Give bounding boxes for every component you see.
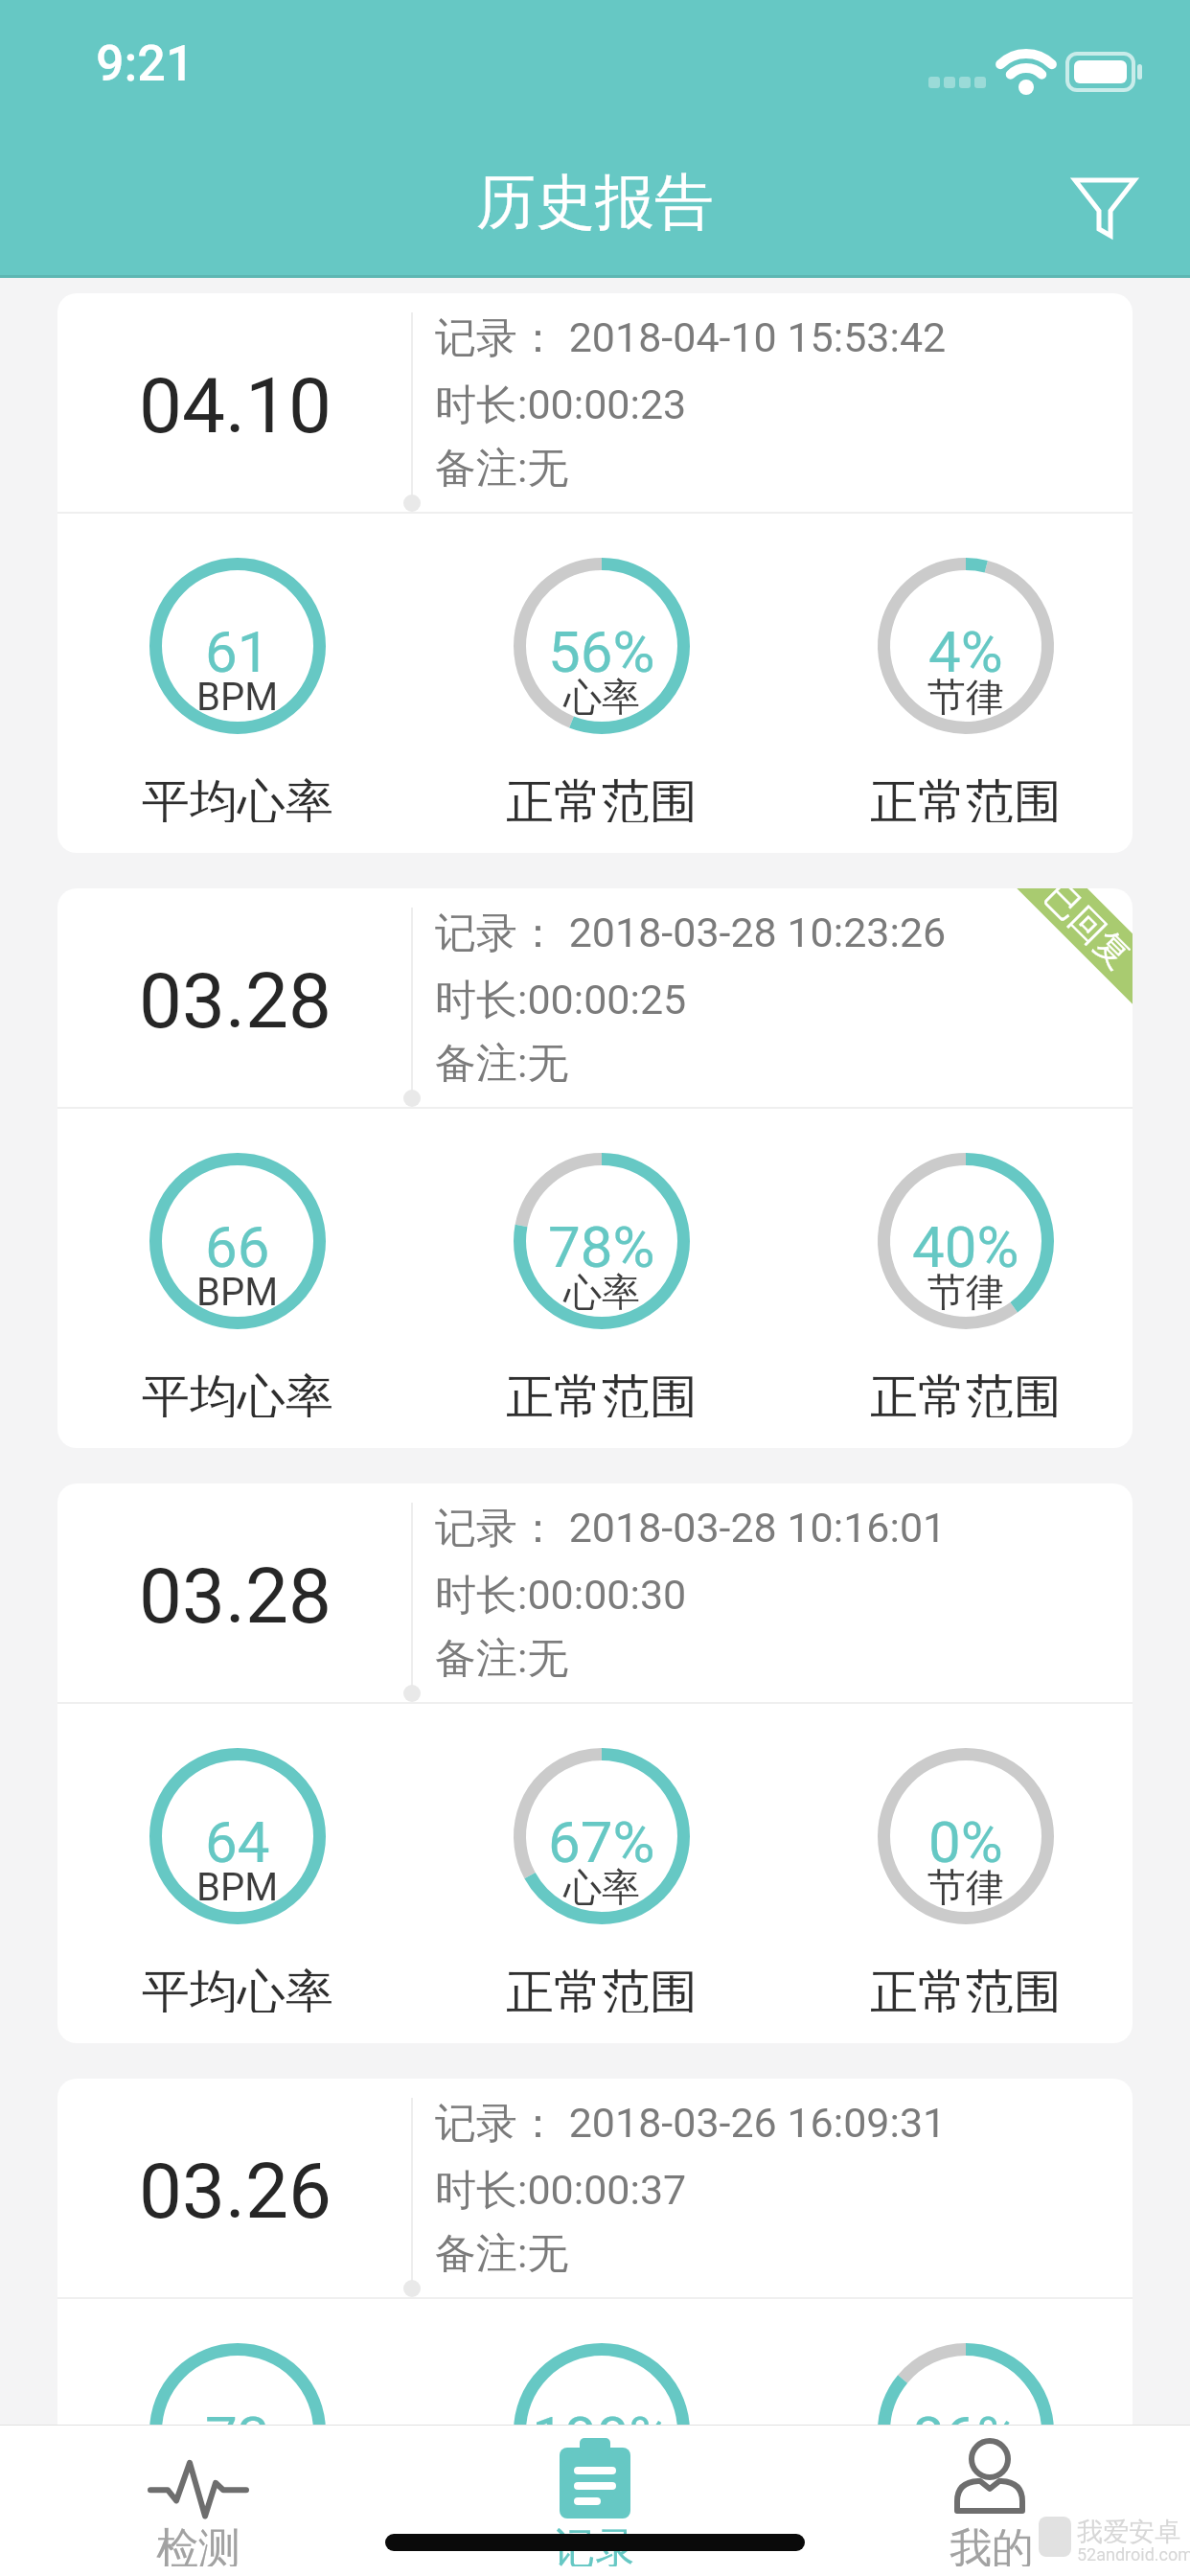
- staticText: 心率: [563, 2458, 640, 2506]
- staticText: 64: [205, 1808, 270, 1866]
- staticText: 67%: [548, 1808, 655, 1866]
- staticText: 时长:00:00:23: [435, 379, 687, 429]
- staticText: 我的: [950, 2522, 1034, 2566]
- staticText: 正常范围: [870, 1963, 1062, 2012]
- staticText: 4%: [928, 618, 1003, 676]
- button[interactable]: [1060, 163, 1152, 255]
- staticText: 记录： 2018-03-28 10:16:01: [435, 1503, 947, 1552]
- staticText: 我爱安卓: [1077, 2516, 1180, 2544]
- staticText: 40%: [912, 1213, 1019, 1271]
- staticText: 时长:00:00:30: [435, 1570, 687, 1620]
- staticText: 03.28: [139, 1552, 332, 1642]
- staticText: 正常范围: [870, 2558, 1062, 2576]
- staticText: 备注:无: [435, 443, 569, 493]
- button[interactable]: 我的: [793, 2425, 1190, 2576]
- staticText: 节律: [927, 673, 1004, 721]
- staticText: 时长:00:00:37: [435, 2165, 687, 2215]
- staticText: 73: [205, 2403, 270, 2461]
- staticText: 61: [205, 618, 270, 676]
- staticText: 心率: [563, 1268, 640, 1316]
- staticText: 节律: [927, 1268, 1004, 1316]
- staticText: 平均心率: [142, 2558, 333, 2576]
- staticText: 节律: [927, 1863, 1004, 1911]
- staticText: 03.26: [139, 2147, 332, 2237]
- staticText: 正常范围: [506, 2558, 698, 2576]
- staticText: 已回复: [1036, 888, 1133, 977]
- staticText: 04.10: [139, 361, 332, 451]
- staticText: 备注:无: [435, 2228, 569, 2278]
- staticText: 56%: [548, 618, 655, 676]
- staticText: 正常范围: [506, 1368, 698, 1417]
- staticText: 86%: [912, 2403, 1019, 2461]
- button[interactable]: 03.26: [57, 2079, 1133, 2576]
- staticText: 正常范围: [506, 1963, 698, 2012]
- staticText: 平均心率: [142, 772, 333, 822]
- staticText: 03.28: [139, 956, 332, 1046]
- button[interactable]: 检测: [0, 2425, 397, 2576]
- staticText: 心率: [563, 1863, 640, 1911]
- staticText: 正常范围: [870, 1368, 1062, 1417]
- staticText: 记录： 2018-04-10 15:53:42: [435, 312, 947, 362]
- staticText: BPM: [196, 1270, 279, 1315]
- staticText: 备注:无: [435, 1038, 569, 1088]
- staticText: 正常范围: [506, 772, 698, 822]
- staticText: 78%: [548, 1213, 655, 1271]
- staticText: 记录： 2018-03-26 16:09:31: [435, 2098, 947, 2148]
- button[interactable]: 03.28: [57, 1483, 1133, 2043]
- staticText: BPM: [196, 2460, 279, 2505]
- staticText: 时长:00:00:25: [435, 975, 687, 1024]
- staticText: BPM: [196, 1865, 279, 1910]
- staticText: 平均心率: [142, 1963, 333, 2012]
- staticText: 历史报告: [476, 165, 714, 234]
- staticText: 52android.com: [1077, 2544, 1190, 2564]
- staticText: 心率: [563, 673, 640, 721]
- staticText: 平均心率: [142, 1368, 333, 1417]
- staticText: 记录： 2018-03-28 10:23:26: [435, 908, 947, 957]
- button[interactable]: 04.10: [57, 293, 1133, 853]
- button[interactable]: 03.28: [57, 888, 1133, 1448]
- staticText: 0%: [928, 1808, 1003, 1866]
- staticText: 正常范围: [870, 772, 1062, 822]
- staticText: 记录: [553, 2522, 637, 2566]
- staticText: 9:21: [96, 34, 195, 88]
- button[interactable]: 记录: [397, 2425, 793, 2576]
- staticText: 66: [205, 1213, 270, 1271]
- staticText: 备注:无: [435, 1633, 569, 1683]
- staticText: 节律: [927, 2458, 1004, 2506]
- staticText: 检测: [156, 2522, 240, 2566]
- staticText: 100%: [532, 2403, 672, 2461]
- staticText: BPM: [196, 675, 279, 720]
